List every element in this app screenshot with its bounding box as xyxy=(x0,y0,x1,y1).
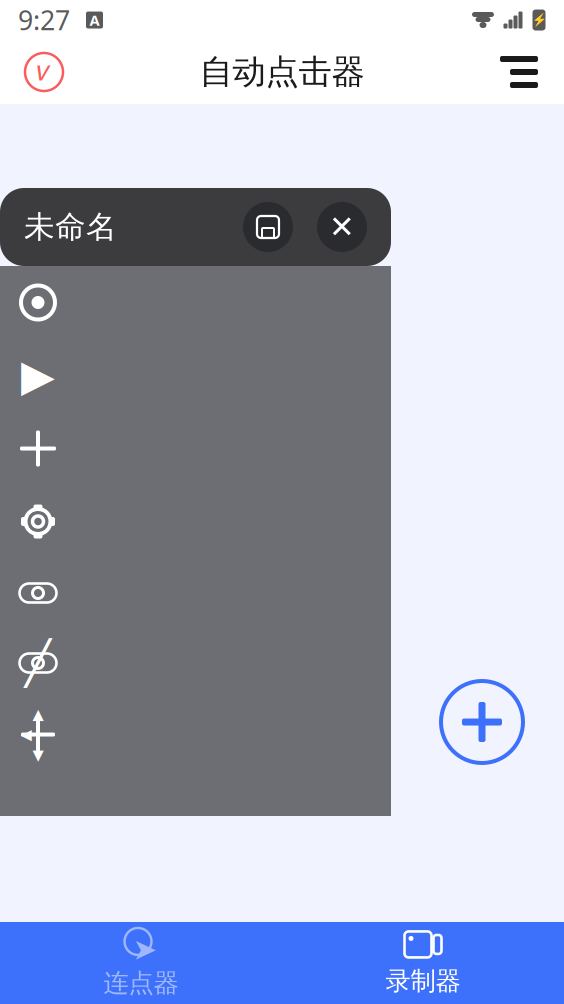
staticText: 𝜈 xyxy=(37,58,51,86)
staticText: ➤ xyxy=(132,933,157,966)
button[interactable]: Add click point xyxy=(0,412,76,485)
staticText: ▲ xyxy=(32,706,43,722)
button[interactable]: Move panel xyxy=(0,698,76,771)
button[interactable]: Settings xyxy=(0,485,76,558)
staticText: ⚡ xyxy=(531,13,546,27)
button[interactable]: Add xyxy=(437,677,527,767)
button[interactable]: Menu xyxy=(494,48,544,96)
staticText: ▶ xyxy=(21,350,55,400)
staticText: 录制器 xyxy=(385,965,460,996)
button[interactable]: Save xyxy=(243,202,293,252)
button[interactable]: Play xyxy=(0,339,76,412)
button[interactable]: 录制器 xyxy=(282,922,564,1004)
button[interactable]: Record xyxy=(0,266,76,339)
staticText: A xyxy=(89,10,99,30)
staticText: 连点器 xyxy=(103,967,178,998)
button[interactable]: Show points xyxy=(0,558,76,628)
button[interactable]: Close xyxy=(317,202,367,252)
button[interactable]: Hide points xyxy=(0,628,76,698)
staticText: ◀ xyxy=(20,726,31,743)
staticText: 未命名 xyxy=(24,208,117,246)
staticText: ╱ xyxy=(25,639,51,687)
staticText: 9:27 xyxy=(18,2,70,38)
staticText: ▼ xyxy=(32,746,43,763)
button[interactable]: ➤ xyxy=(0,922,282,1004)
staticText: 自动点击器 xyxy=(199,51,364,92)
staticText: ✕ xyxy=(329,210,355,244)
button[interactable]: App logo xyxy=(20,46,68,98)
